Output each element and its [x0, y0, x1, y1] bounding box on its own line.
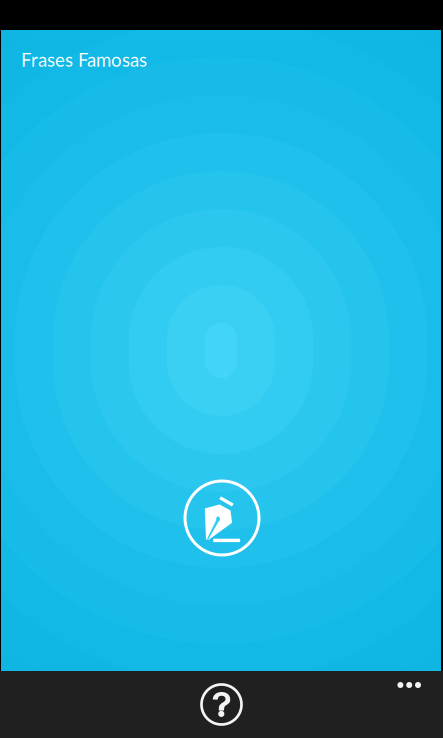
- button[interactable]: Help: [191, 674, 251, 734]
- button[interactable]: More options: [378, 655, 440, 715]
- staticText: Frases Famosas: [21, 48, 147, 71]
- button[interactable]: New quote: [174, 470, 270, 566]
- button[interactable]: Frases Famosas: [21, 47, 221, 71]
